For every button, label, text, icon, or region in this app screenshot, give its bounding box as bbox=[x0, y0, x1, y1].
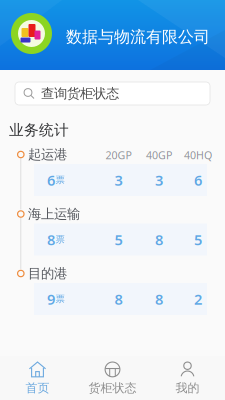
staticText: 20GP bbox=[105, 148, 131, 162]
staticText: 我的 bbox=[175, 381, 199, 395]
staticText: 首页 bbox=[25, 381, 49, 395]
staticText: 8 bbox=[47, 230, 55, 249]
staticText: 5 bbox=[194, 230, 202, 249]
staticText: 起运港 bbox=[28, 146, 67, 163]
staticText: 2 bbox=[194, 289, 202, 309]
staticText: 票 bbox=[55, 234, 64, 245]
staticText: 票 bbox=[55, 293, 64, 305]
staticText: 海上运输 bbox=[28, 206, 80, 222]
button[interactable]: 我的 bbox=[150, 361, 225, 395]
staticText: 查询货柜状态 bbox=[41, 85, 119, 102]
staticText: 数据与物流有限公司 bbox=[66, 27, 210, 47]
button[interactable]: 货柜状态 bbox=[75, 361, 150, 395]
staticText: 8 bbox=[155, 289, 163, 309]
staticText: 业务统计 bbox=[9, 121, 69, 139]
staticText: 3 bbox=[114, 170, 122, 190]
staticText: 6 bbox=[47, 170, 55, 190]
staticText: 6 bbox=[194, 170, 202, 190]
staticText: 货柜状态 bbox=[88, 381, 136, 395]
staticText: 8 bbox=[155, 230, 163, 249]
staticText: 9 bbox=[47, 289, 55, 309]
staticText: 8 bbox=[114, 289, 122, 309]
staticText: 5 bbox=[114, 230, 122, 249]
staticText: 3 bbox=[155, 170, 163, 190]
staticText: 40HQ bbox=[184, 148, 212, 162]
staticText: 目的港 bbox=[28, 265, 67, 282]
staticText: 40GP bbox=[146, 148, 172, 162]
staticText: 票 bbox=[55, 174, 64, 186]
button[interactable]: 首页 bbox=[0, 361, 75, 395]
button[interactable]: 查询货柜状态 bbox=[0, 82, 225, 105]
